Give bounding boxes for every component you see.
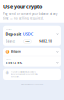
staticText: Fund	[25, 41, 29, 42]
staticText: Pay, send or convert your balance at any	[3, 12, 57, 16]
staticText: 0.0412 BTC	[6, 61, 23, 64]
staticText: Use your crypto	[3, 3, 42, 10]
staticText: Amount	[6, 58, 11, 60]
staticText: B	[6, 50, 8, 53]
staticText: Transfers settle within minutes. Network	[11, 71, 36, 73]
staticText: USDC	[23, 31, 34, 37]
button[interactable]: Fund	[23, 40, 31, 43]
button[interactable]: Amount	[3, 56, 61, 67]
staticText: i	[7, 71, 8, 74]
button[interactable]: B	[3, 48, 61, 56]
staticText: transaction.	[11, 76, 19, 78]
staticText: time — no selling required.	[3, 17, 44, 20]
staticText: $482.10	[39, 40, 52, 43]
staticText: Rates update every 15 seconds	[20, 84, 43, 85]
staticText: fees are shown before you confirm the	[11, 73, 38, 75]
staticText: PAY WITH	[6, 28, 12, 30]
staticText: Balance	[6, 40, 16, 43]
staticText: Bitcoin	[11, 50, 21, 53]
staticText: Deposit	[6, 31, 22, 37]
